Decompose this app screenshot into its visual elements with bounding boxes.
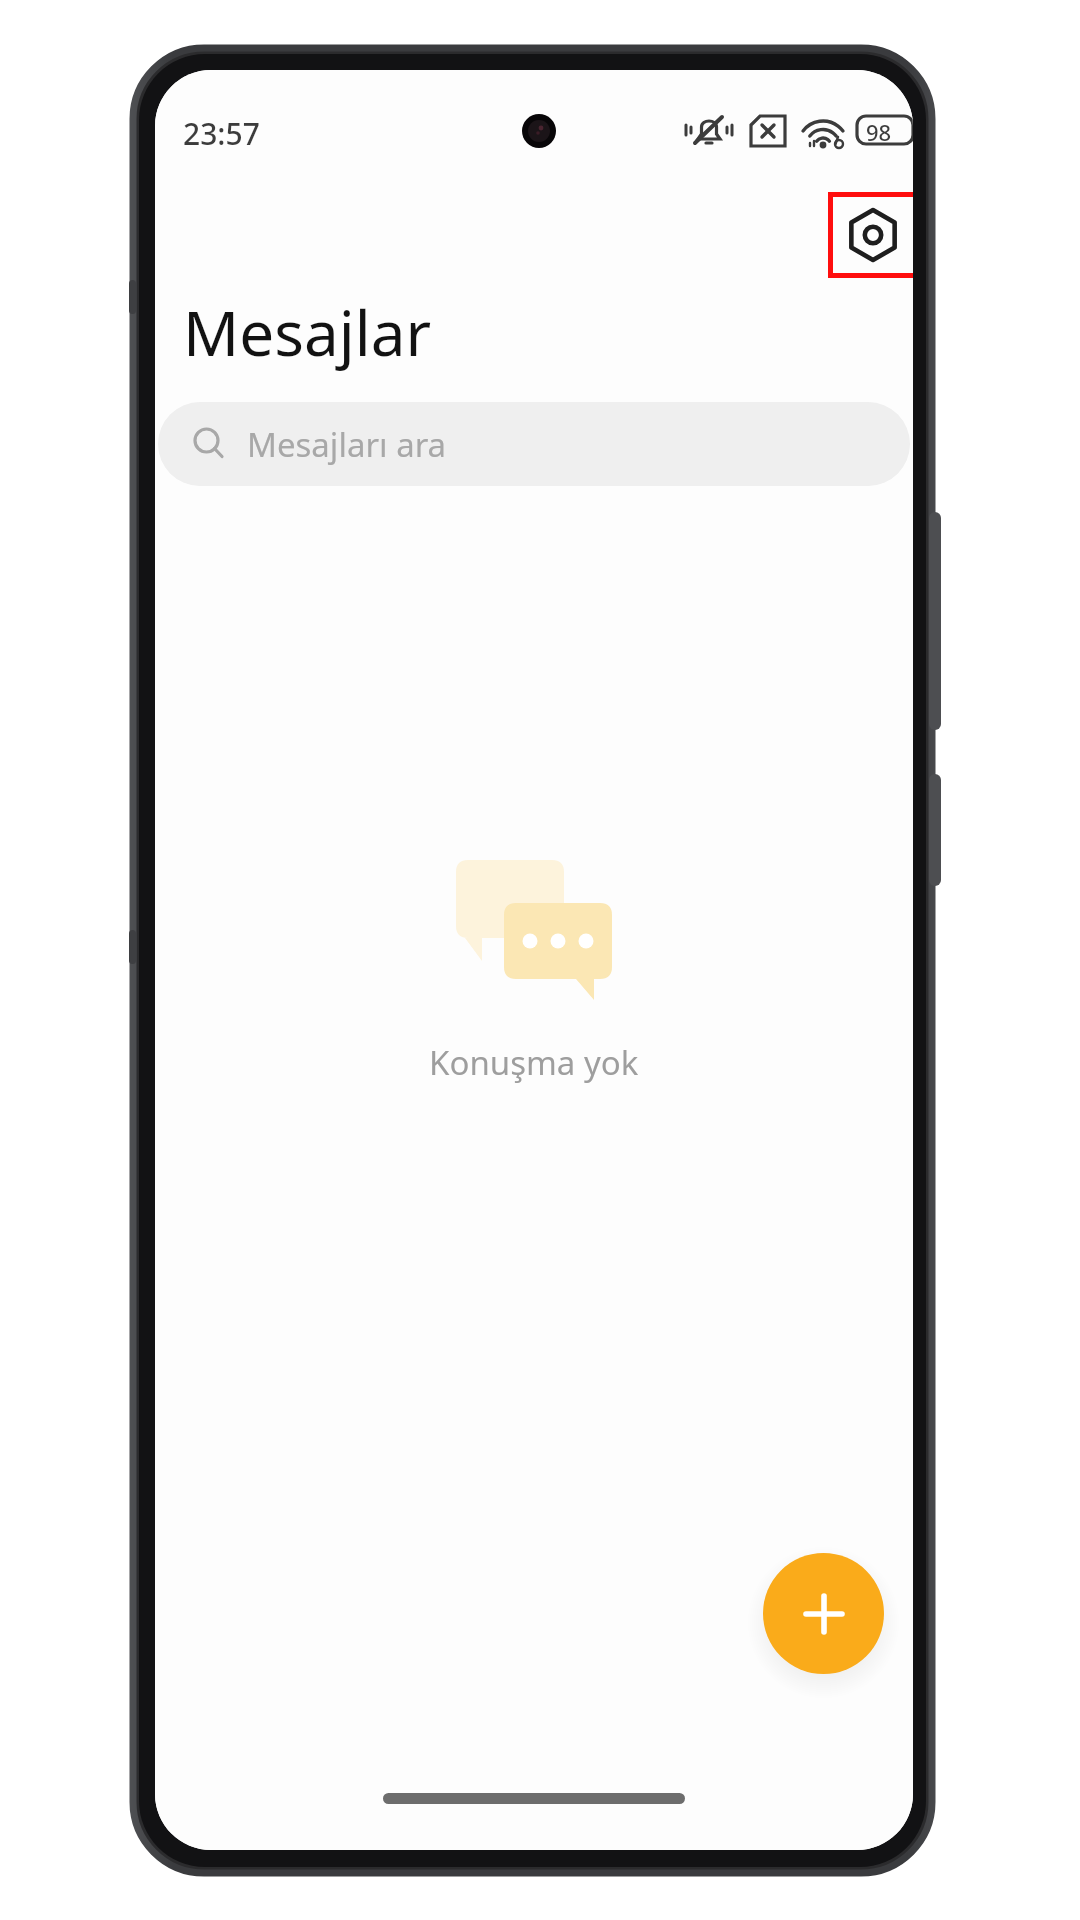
staticText: Mesajları ara <box>247 422 447 467</box>
staticText: 23:57 <box>183 113 260 154</box>
button[interactable]: Mesajları ara <box>158 402 910 486</box>
staticText: 98 <box>866 117 892 147</box>
button[interactable]: New conversation <box>763 1553 884 1674</box>
button[interactable]: Settings <box>828 192 913 278</box>
staticText: Konuşma yok <box>429 1040 639 1085</box>
staticText: Mesajlar <box>183 290 432 374</box>
